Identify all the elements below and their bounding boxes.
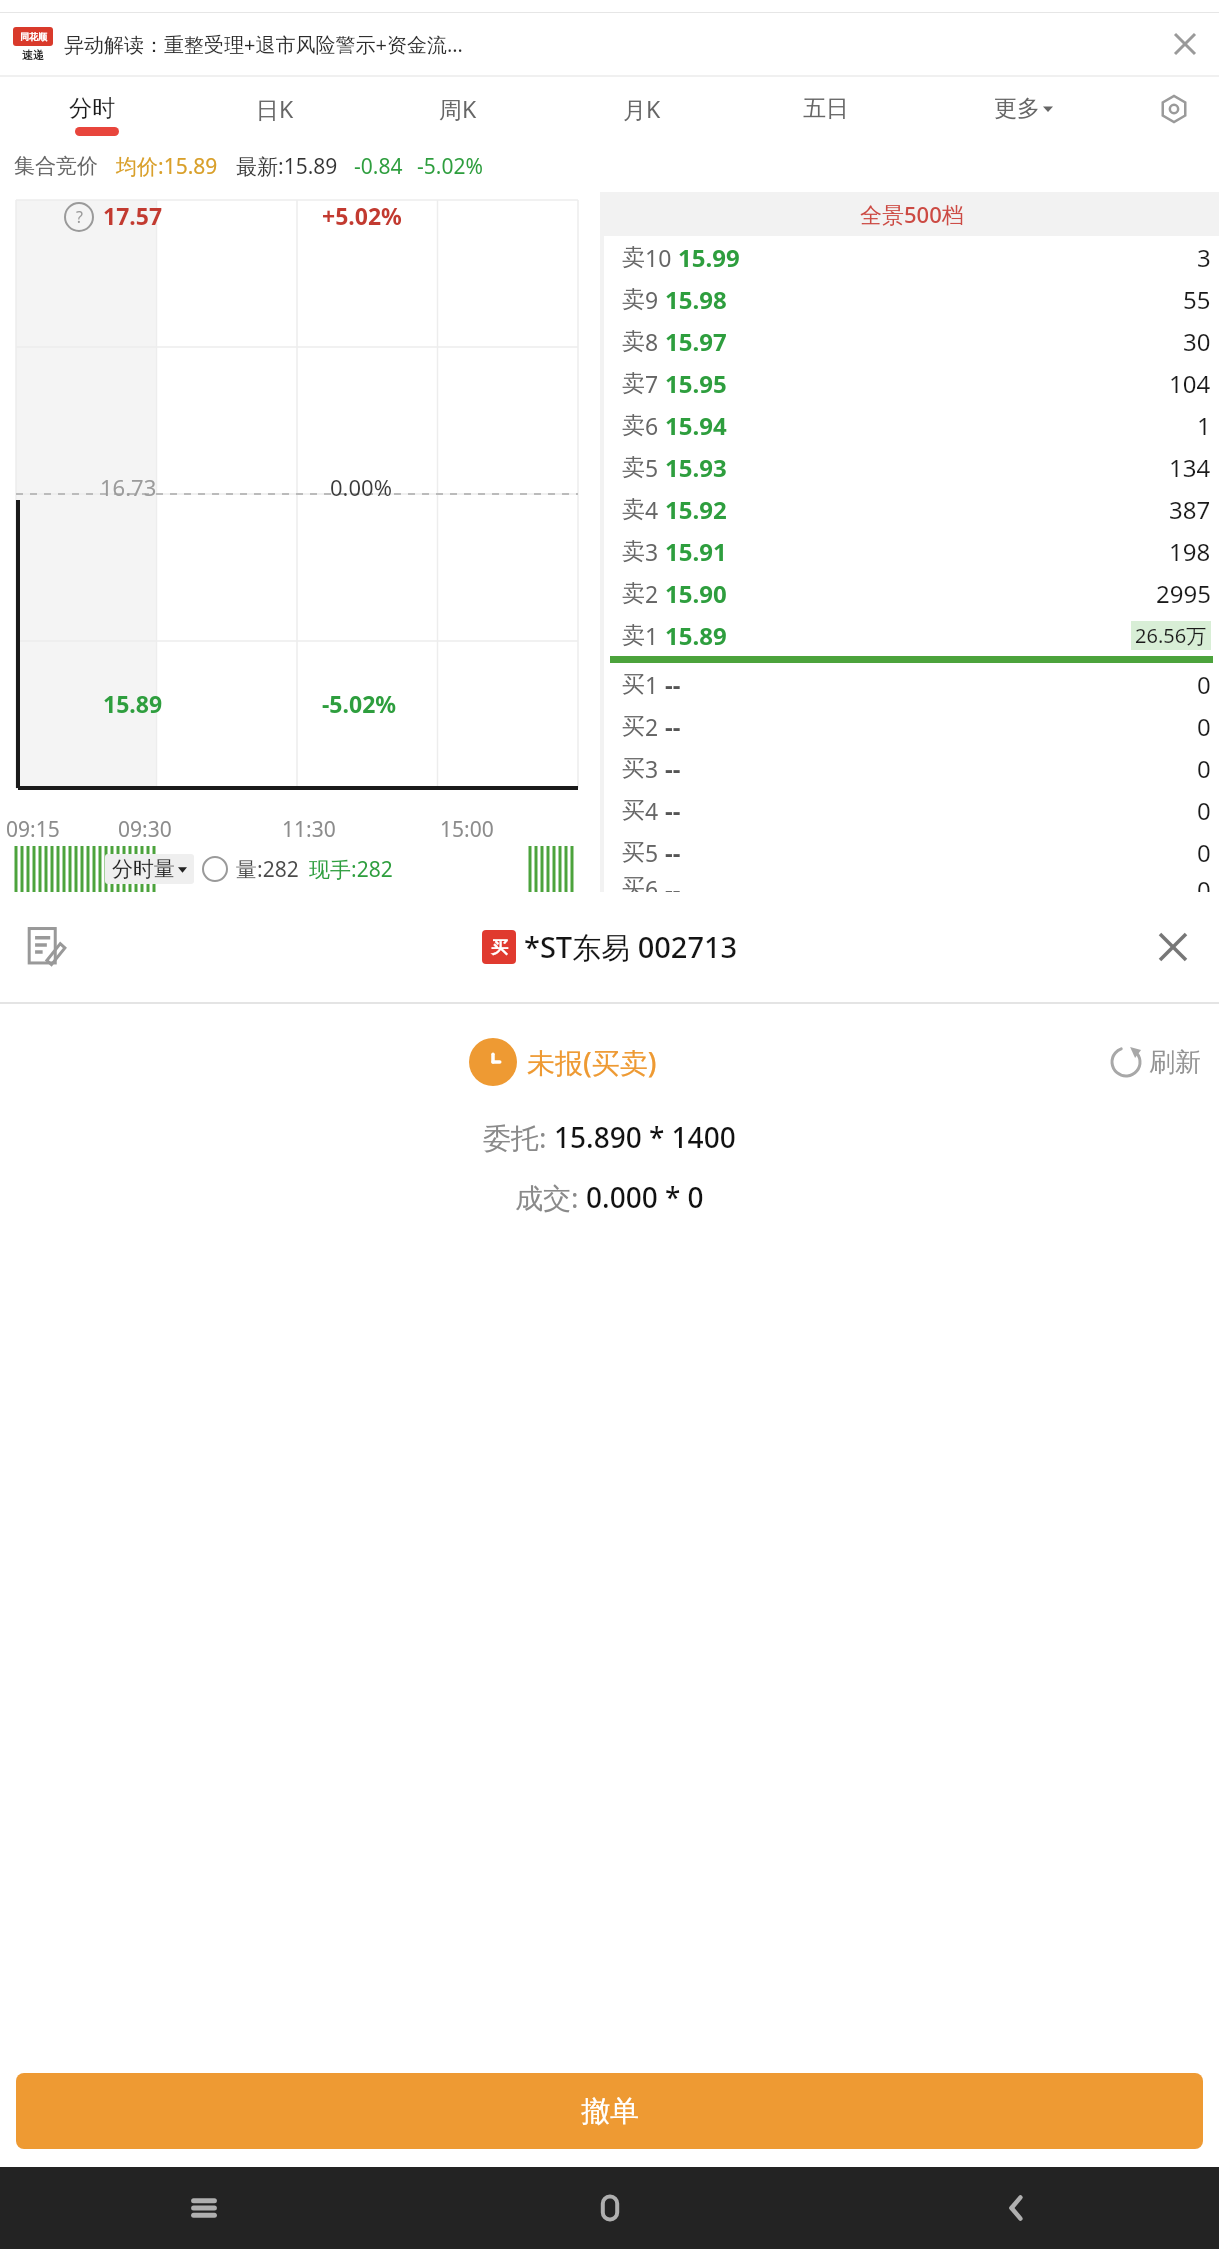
staticText: 分时量 bbox=[112, 856, 175, 882]
button[interactable]: 同花顺 bbox=[0, 13, 1219, 75]
button[interactable]: 月K bbox=[550, 77, 734, 140]
button[interactable]: Notes bbox=[14, 915, 78, 979]
staticText: 3 bbox=[1197, 241, 1211, 274]
staticText: 周K bbox=[439, 93, 477, 124]
button[interactable]: 未报(买卖) bbox=[469, 1038, 657, 1086]
staticText: 委托: bbox=[483, 1118, 554, 1156]
staticText: 104 bbox=[1169, 367, 1211, 400]
staticText: 2995 bbox=[1156, 577, 1211, 610]
button[interactable]: 刷新 bbox=[1109, 1045, 1201, 1079]
staticText: 卖 bbox=[622, 411, 645, 440]
staticText: 买 bbox=[622, 838, 645, 867]
staticText: 全景500档 bbox=[860, 199, 964, 229]
staticText: 同花顺 bbox=[20, 31, 47, 42]
staticText: -- bbox=[665, 873, 681, 892]
button[interactable]: 周K bbox=[366, 77, 550, 140]
staticText: 17.57 bbox=[103, 200, 163, 231]
button[interactable]: Settings bbox=[1129, 77, 1219, 140]
staticText: 5 bbox=[645, 452, 659, 483]
staticText: 198 bbox=[1169, 535, 1211, 568]
staticText: 15.92 bbox=[665, 493, 727, 526]
staticText: 0 bbox=[1197, 873, 1211, 892]
staticText: 09:15 bbox=[6, 815, 60, 844]
staticText: +5.02% bbox=[322, 200, 402, 231]
button[interactable]: Help bbox=[62, 200, 96, 234]
staticText: 未报(买卖) bbox=[527, 1043, 657, 1081]
staticText: 30 bbox=[1183, 325, 1211, 358]
staticText: 0 bbox=[1197, 710, 1211, 743]
button[interactable]: 日K bbox=[183, 77, 366, 140]
button[interactable]: 卖 bbox=[604, 530, 1219, 572]
button[interactable]: Close bbox=[1141, 915, 1205, 979]
staticText: -0.84 bbox=[354, 152, 403, 181]
staticText: 刷新 bbox=[1149, 1046, 1201, 1079]
button[interactable]: 卖 bbox=[604, 362, 1219, 404]
button[interactable]: 买 bbox=[604, 747, 1219, 789]
staticText: 成交: bbox=[515, 1178, 586, 1216]
staticText: ? bbox=[76, 206, 83, 228]
staticText: 4 bbox=[645, 795, 659, 826]
button[interactable]: 卖 bbox=[604, 488, 1219, 530]
button[interactable]: 买 bbox=[604, 873, 1219, 892]
button[interactable]: 卖 bbox=[604, 446, 1219, 488]
staticText: *ST东易 002713 bbox=[524, 927, 738, 967]
button[interactable]: 分时量 bbox=[105, 854, 194, 884]
button[interactable]: 卖 bbox=[604, 320, 1219, 362]
staticText: 11:30 bbox=[282, 815, 336, 844]
button[interactable]: 买 bbox=[604, 663, 1219, 705]
staticText: 卖 bbox=[622, 243, 645, 272]
staticText: 速递 bbox=[22, 48, 44, 62]
staticText: 卖 bbox=[622, 453, 645, 482]
button[interactable]: 撤单 bbox=[16, 2073, 1203, 2149]
staticText: 0 bbox=[1197, 668, 1211, 701]
staticText: 387 bbox=[1169, 493, 1211, 526]
button[interactable]: 分时 bbox=[0, 77, 183, 140]
button[interactable]: Home bbox=[407, 2167, 813, 2249]
button[interactable]: Recent apps bbox=[0, 2167, 407, 2249]
button[interactable]: 买 bbox=[604, 705, 1219, 747]
staticText: -- bbox=[665, 668, 681, 701]
staticText: 集合竞价 bbox=[14, 153, 98, 179]
staticText: 分时 bbox=[69, 94, 115, 123]
button[interactable]: 全景500档 bbox=[604, 192, 1219, 236]
staticText: 买 bbox=[622, 796, 645, 825]
button[interactable]: 卖 bbox=[604, 278, 1219, 320]
staticText: 1 bbox=[1197, 409, 1211, 442]
staticText: 卖 bbox=[622, 579, 645, 608]
staticText: 3 bbox=[645, 753, 659, 784]
staticText: 0 bbox=[1197, 836, 1211, 869]
button[interactable]: 五日 bbox=[734, 77, 918, 140]
staticText: -- bbox=[665, 794, 681, 827]
staticText: 15.98 bbox=[665, 283, 727, 316]
staticText: 4 bbox=[645, 494, 659, 525]
button[interactable]: 卖 bbox=[604, 404, 1219, 446]
staticText: 撤单 bbox=[581, 2093, 639, 2130]
button[interactable]: 卖 bbox=[604, 572, 1219, 614]
button[interactable]: 卖 bbox=[604, 236, 1219, 278]
staticText: -5.02% bbox=[417, 152, 483, 181]
staticText: 9 bbox=[645, 284, 659, 315]
staticText: 1 bbox=[645, 620, 659, 651]
staticText: 15.90 bbox=[665, 577, 727, 610]
staticText: 卖 bbox=[622, 495, 645, 524]
button[interactable]: 卖 bbox=[604, 614, 1219, 656]
staticText: 买 bbox=[491, 937, 508, 958]
staticText: 月K bbox=[623, 93, 661, 124]
staticText: 卖 bbox=[622, 537, 645, 566]
staticText: 6 bbox=[645, 410, 659, 441]
button[interactable]: Close banner bbox=[1163, 22, 1207, 66]
staticText: 量:282 bbox=[236, 855, 299, 884]
staticText: 0.00% bbox=[330, 472, 392, 502]
staticText: 日K bbox=[256, 93, 294, 124]
button[interactable]: 更多 bbox=[918, 77, 1129, 140]
button[interactable]: 买 bbox=[604, 831, 1219, 873]
staticText: 55 bbox=[1183, 283, 1211, 316]
button[interactable]: Back bbox=[813, 2167, 1219, 2249]
staticText: 买 bbox=[622, 670, 645, 699]
staticText: 均价:15.89 bbox=[116, 152, 218, 181]
staticText: 0 bbox=[1197, 752, 1211, 785]
button[interactable]: 买 bbox=[604, 789, 1219, 831]
staticText: 15.89 bbox=[103, 688, 163, 719]
staticText: 1 bbox=[645, 669, 659, 700]
staticText: 16.73 bbox=[100, 472, 157, 502]
